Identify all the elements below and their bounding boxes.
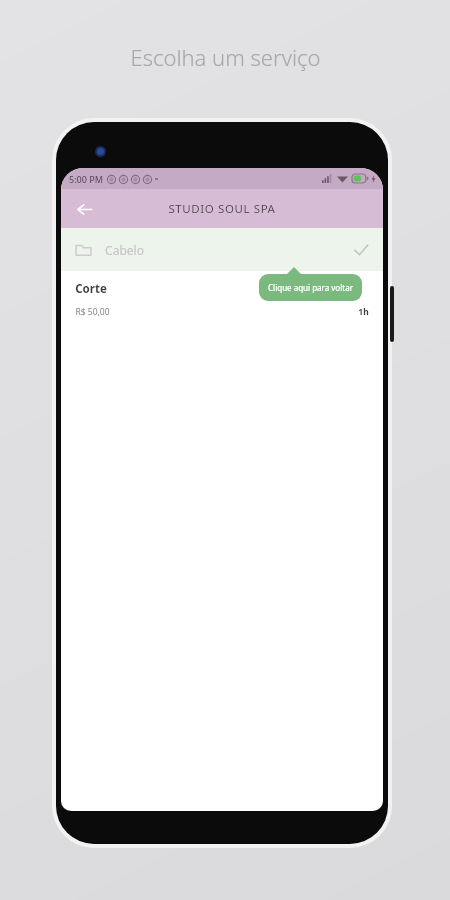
staticText: Corte [75, 281, 107, 297]
staticText: R$ 50,00 [75, 306, 110, 318]
button[interactable]: Clique aqui para voltar [259, 274, 362, 301]
button[interactable]: Voltar [67, 192, 101, 226]
staticText: Escolha um serviço [130, 42, 321, 72]
staticText: STUDIO SOUL SPA [168, 201, 276, 217]
staticText: Cabelo [105, 242, 144, 258]
button[interactable]: Corte [61, 271, 383, 328]
button[interactable]: Cabelo [61, 228, 383, 271]
staticText: 5:00 PM [69, 173, 103, 185]
staticText: 1h [358, 306, 369, 318]
staticText: Clique aqui para voltar [268, 282, 353, 293]
